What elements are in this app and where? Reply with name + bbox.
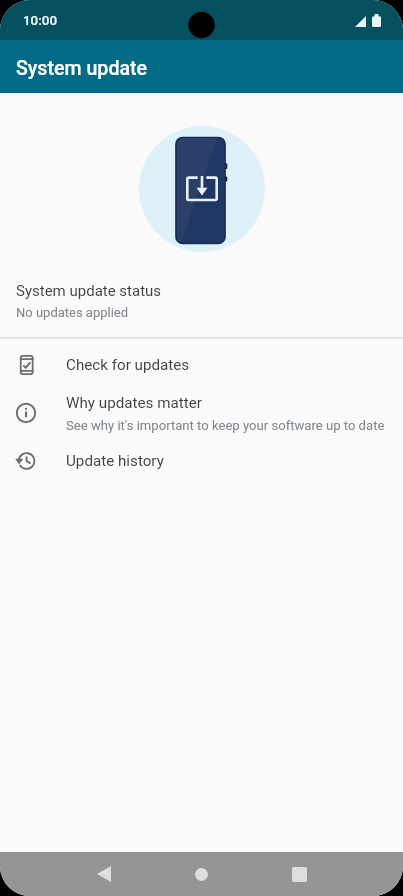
button[interactable]: Recent apps [275,852,323,896]
button[interactable]: Update history [0,437,403,485]
staticText: System update status [16,282,162,300]
staticText: See why it's important to keep your soft… [66,418,385,433]
button[interactable]: System update [0,40,403,93]
staticText: Why updates matter [66,394,202,412]
staticText: 10:00 [23,13,57,29]
staticText: Check for updates [66,356,190,374]
staticText: No updates applied [16,305,129,320]
button[interactable]: Back [80,852,128,896]
staticText: System update [16,57,148,80]
button[interactable]: Why updates matter [0,389,403,437]
staticText: Update history [66,452,164,470]
button[interactable]: Check for updates [0,341,403,389]
button[interactable]: Home [177,852,225,896]
